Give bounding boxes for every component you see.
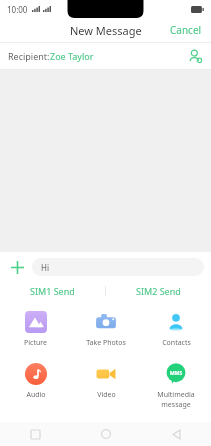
staticText: SIM1 Send [30,285,75,297]
button[interactable]: Audio [0,359,71,411]
button[interactable]: Back [141,422,211,446]
staticText: Picture [24,338,47,348]
button[interactable]: Contacts [141,307,211,359]
button[interactable]: SIM1 Send [0,282,105,300]
staticText: Zoe Taylor [50,50,94,62]
button[interactable]: Picture [0,307,71,359]
staticText: New Message [70,23,142,38]
staticText: Video [97,390,116,400]
staticText: Recipient: [8,50,50,62]
button[interactable]: Video [71,359,141,411]
button[interactable]: Cancel [161,19,211,41]
button[interactable]: Hi [32,258,204,276]
staticText: Hi [41,262,49,273]
button[interactable]: Recents [0,422,71,446]
button[interactable]: Take Photos [71,307,141,359]
staticText: Multimedia message [143,390,209,410]
staticText: 10:00 [7,4,28,15]
staticText: Audio [26,390,46,400]
button[interactable]: Add recipient from contacts [188,49,211,64]
staticText: Cancel [170,23,202,37]
staticText: Take Photos [86,338,126,348]
button[interactable]: SIM2 Send [106,282,211,300]
button[interactable]: Home [71,422,141,446]
staticText: MMS [170,370,183,377]
staticText: SIM2 Send [136,285,181,297]
staticText: Contacts [162,338,191,348]
button[interactable]: MMS [141,359,211,411]
button[interactable]: Add attachment [7,257,27,277]
